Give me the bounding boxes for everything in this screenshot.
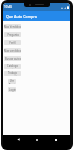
button[interactable]: Pregunta xyxy=(4,32,21,37)
button[interactable]: Recent apps xyxy=(52,136,59,143)
button[interactable]: Mas Vendidos xyxy=(4,24,21,29)
staticText: Pregunta xyxy=(7,33,19,37)
staticText: Catalogo autos xyxy=(4,64,21,69)
staticText: 10:45 xyxy=(4,5,13,9)
staticText: Grupo xyxy=(9,22,17,25)
staticText: Mas Vendidos xyxy=(4,25,21,29)
button[interactable]: Perfil xyxy=(4,40,21,45)
button[interactable]: Login xyxy=(8,87,16,92)
staticText: Ver Reset xyxy=(8,79,16,84)
staticText: Login xyxy=(9,88,16,92)
staticText: Que Auto Compra xyxy=(6,14,37,19)
button[interactable]: Back xyxy=(15,136,22,143)
button[interactable]: Ver Reset xyxy=(8,79,16,84)
button[interactable]: Home xyxy=(33,136,40,143)
staticText: Buscar autos xyxy=(5,57,21,61)
staticText: Perfil xyxy=(9,41,16,45)
button[interactable]: Trabajo parecido xyxy=(4,71,21,76)
button[interactable]: Buscar autos xyxy=(4,56,21,61)
staticText: Trabajo parecido xyxy=(4,71,21,76)
button[interactable]: Catalogo autos xyxy=(4,64,21,69)
staticText: Mas vendidos xyxy=(4,49,21,53)
button[interactable]: Mas vendidos xyxy=(4,48,21,53)
